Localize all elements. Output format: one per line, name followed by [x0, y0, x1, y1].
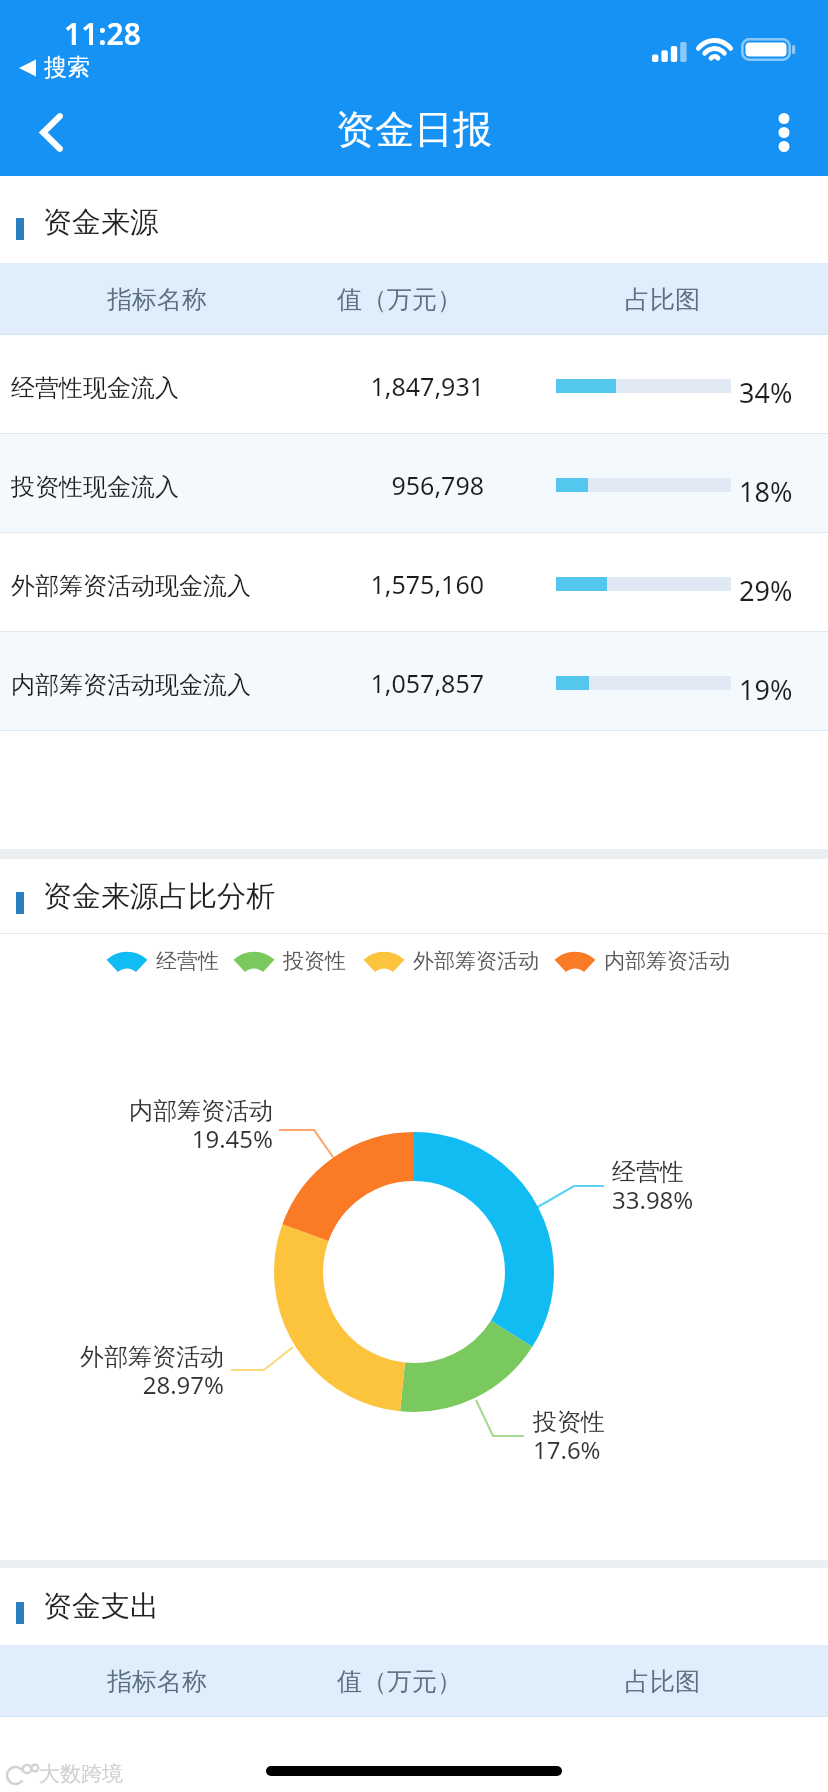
button[interactable]: 投资性现金流入: [0, 434, 828, 533]
staticText: 11:28: [64, 13, 141, 54]
staticText: 经营性: [156, 948, 219, 974]
staticText: 经营性现金流入: [11, 373, 179, 403]
staticText: 18%: [739, 473, 793, 510]
button[interactable]: 投资性: [235, 939, 346, 983]
staticText: 值（万元）: [337, 1666, 462, 1697]
button[interactable]: 内部筹资活动: [556, 939, 730, 983]
staticText: 29%: [739, 572, 793, 609]
button[interactable]: More options: [754, 102, 814, 162]
button[interactable]: 外部筹资活动现金流入: [0, 533, 828, 632]
staticText: 19%: [739, 671, 793, 708]
staticText: 19.45%: [0, 1122, 273, 1155]
staticText: 指标名称: [107, 1666, 207, 1697]
staticText: 占比图: [625, 284, 700, 315]
button[interactable]: Back: [23, 104, 79, 160]
staticText: 1,575,160: [284, 567, 484, 601]
staticText: 1,847,931: [284, 369, 484, 403]
staticText: 经营性: [612, 1157, 684, 1187]
button[interactable]: 经营性: [108, 939, 219, 983]
staticText: 28.97%: [0, 1368, 224, 1401]
staticText: 内部筹资活动: [0, 1096, 273, 1126]
staticText: 投资性: [283, 948, 346, 974]
staticText: 资金支出: [43, 1588, 159, 1625]
staticText: 33.98%: [612, 1183, 694, 1216]
staticText: 占比图: [625, 1666, 700, 1697]
button[interactable]: 内部筹资活动现金流入: [0, 632, 828, 731]
staticText: 外部筹资活动: [413, 948, 539, 974]
button[interactable]: Back to 搜索: [18, 53, 90, 82]
staticText: 资金日报: [336, 105, 492, 154]
button[interactable]: 经营性现金流入: [0, 335, 828, 434]
staticText: 投资性现金流入: [11, 472, 179, 502]
staticText: 大数跨境: [39, 1761, 123, 1787]
staticText: 17.6%: [533, 1433, 601, 1466]
staticText: 内部筹资活动: [604, 948, 730, 974]
staticText: 资金来源占比分析: [43, 878, 275, 915]
staticText: 投资性: [533, 1407, 605, 1437]
staticText: 搜索: [44, 53, 90, 82]
staticText: 外部筹资活动现金流入: [11, 571, 251, 601]
staticText: 外部筹资活动: [0, 1342, 224, 1372]
staticText: 资金来源: [43, 204, 159, 241]
staticText: 值（万元）: [337, 284, 462, 315]
button[interactable]: 外部筹资活动: [365, 939, 539, 983]
staticText: 34%: [739, 374, 793, 411]
staticText: 956,798: [284, 468, 484, 502]
staticText: 指标名称: [107, 284, 207, 315]
staticText: 1,057,857: [284, 666, 484, 700]
staticText: 内部筹资活动现金流入: [11, 670, 251, 700]
